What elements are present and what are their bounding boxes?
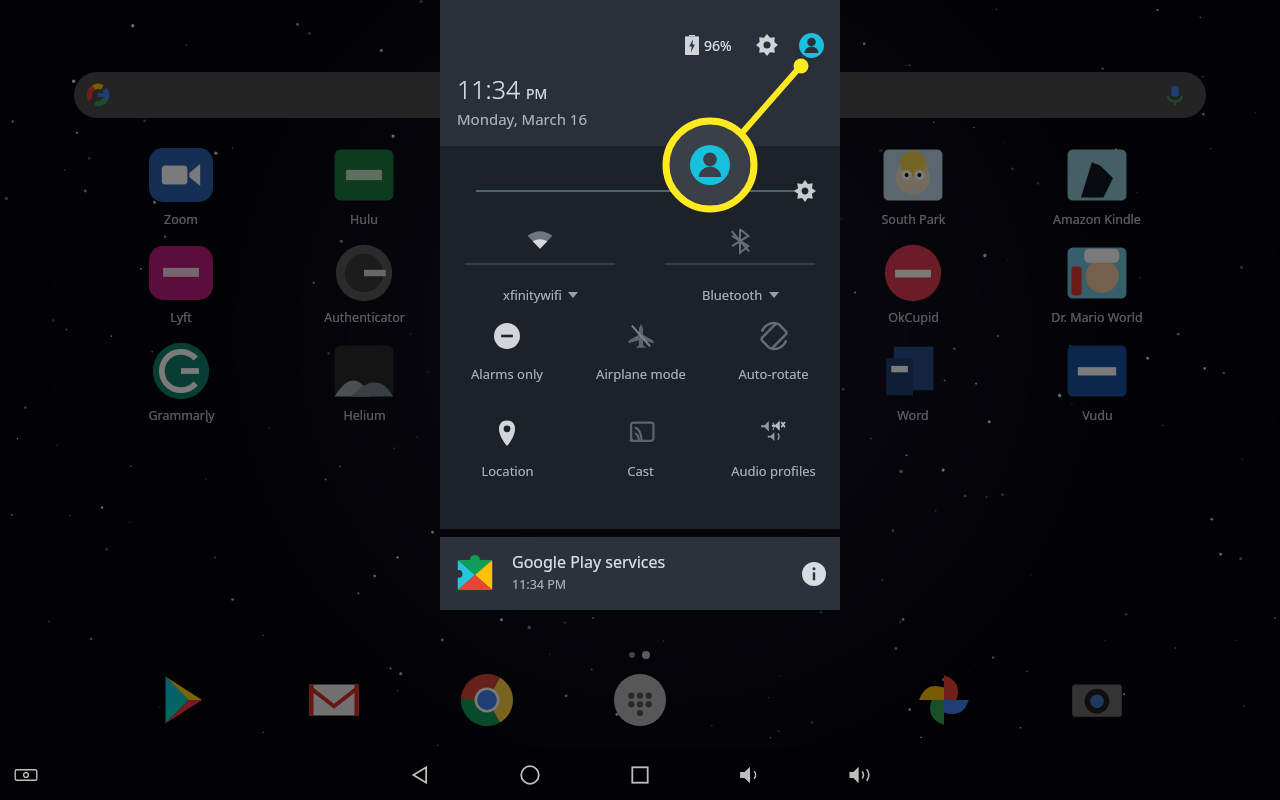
staticText: 11:34 <box>457 72 521 106</box>
staticText: Zoom <box>164 211 198 228</box>
button[interactable]: Zoom <box>131 140 231 228</box>
button[interactable]: Recents <box>618 753 662 797</box>
button[interactable]: Cast <box>574 408 707 498</box>
staticText: Alarms only <box>471 365 543 383</box>
staticText: Google Play services <box>512 551 666 573</box>
button[interactable]: Lyft <box>131 238 231 326</box>
staticText: Auto-rotate <box>738 365 809 383</box>
button[interactable]: Settings <box>752 30 782 60</box>
button[interactable]: Alarms only <box>440 311 574 401</box>
staticText: Amazon Kindle <box>1053 211 1141 228</box>
button[interactable]: Brightness <box>792 178 818 204</box>
button[interactable]: Auto-rotate <box>707 311 840 401</box>
staticText: Grammarly <box>148 407 215 424</box>
button[interactable]: Camera <box>1062 665 1132 735</box>
staticText: xfinitywifi <box>503 286 562 304</box>
staticText: Cast <box>627 462 654 480</box>
staticText: Audio profiles <box>731 462 816 480</box>
button[interactable]: xfinitywifi <box>440 224 640 308</box>
staticText: Bluetooth <box>702 286 763 304</box>
staticText: Lyft <box>170 309 192 326</box>
button[interactable]: Gmail <box>299 665 369 735</box>
button[interactable]: South Park <box>863 140 963 228</box>
button[interactable]: Back <box>398 753 442 797</box>
staticText: Vudu <box>1082 407 1113 424</box>
button[interactable]: Chrome <box>452 665 522 735</box>
staticText: Dr. Mario World <box>1051 309 1143 326</box>
button[interactable]: Audio profiles <box>707 408 840 498</box>
button[interactable]: Word <box>863 336 963 424</box>
button[interactable]: Helium <box>314 336 414 424</box>
staticText: OkCupid <box>888 309 939 326</box>
staticText: Word <box>897 407 929 424</box>
button[interactable]: Home <box>508 753 552 797</box>
button[interactable]: Location <box>440 408 574 498</box>
staticText: PM <box>526 84 548 103</box>
button[interactable]: Amazon Kindle <box>1047 140 1147 228</box>
staticText: Helium <box>343 407 386 424</box>
staticText: Airplane mode <box>596 365 686 383</box>
button[interactable]: Bluetooth <box>640 224 840 308</box>
button[interactable]: Hulu <box>314 140 414 228</box>
button[interactable] <box>74 72 1206 118</box>
staticText: Authenticator <box>324 309 405 326</box>
button[interactable]: Airplane mode <box>574 311 707 401</box>
staticText: Location <box>481 462 534 480</box>
button[interactable]: Grammarly <box>131 336 231 424</box>
button[interactable]: Dr. Mario World <box>1047 238 1147 326</box>
button[interactable]: User profile <box>796 30 826 60</box>
button[interactable]: All apps <box>605 665 675 735</box>
button[interactable]: Google Play services <box>440 537 840 610</box>
button[interactable]: Play Store <box>146 665 216 735</box>
button[interactable]: Notification info <box>802 562 826 586</box>
staticText: 11:34 PM <box>512 576 567 593</box>
button[interactable]: Volume up <box>838 753 882 797</box>
button[interactable]: Photos <box>909 665 979 735</box>
staticText: Monday, March 16 <box>457 109 588 129</box>
staticText: South Park <box>881 211 946 228</box>
staticText: 96% <box>704 36 732 55</box>
button[interactable]: OkCupid <box>863 238 963 326</box>
button[interactable]: Screenshot <box>14 763 38 787</box>
button[interactable]: Vudu <box>1047 336 1147 424</box>
staticText: Hulu <box>350 211 378 228</box>
button[interactable]: Authenticator <box>314 238 414 326</box>
button[interactable]: Volume down <box>728 753 772 797</box>
